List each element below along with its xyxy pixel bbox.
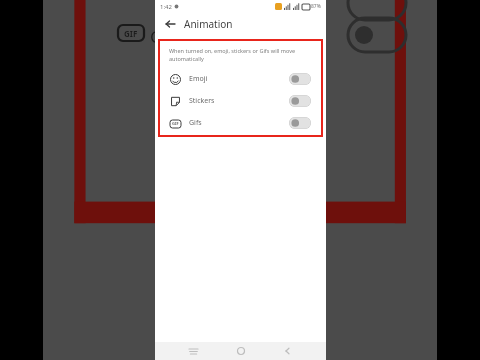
staticText: GIF <box>124 28 138 39</box>
button[interactable]: Emoji <box>160 68 321 90</box>
staticText: 87% <box>311 3 321 10</box>
staticText: Animation <box>184 17 233 31</box>
staticText: Gif <box>150 25 173 48</box>
staticText: When turned on, emoji, stickers or Gifs … <box>169 47 312 63</box>
button[interactable]: Toggle <box>289 73 311 85</box>
staticText: Gifs <box>189 118 202 128</box>
button[interactable]: Home <box>232 342 250 360</box>
button[interactable]: Toggle <box>289 117 311 129</box>
button[interactable]: Back <box>162 16 178 32</box>
button[interactable]: Toggle <box>289 95 311 107</box>
button[interactable]: GIF <box>160 112 321 134</box>
staticText: Stickers <box>189 96 215 106</box>
button[interactable]: Back <box>279 342 297 360</box>
button[interactable]: Stickers <box>160 90 321 112</box>
staticText: Emoji <box>189 74 208 84</box>
button[interactable]: Recents <box>184 342 202 360</box>
staticText: GIF <box>172 121 179 126</box>
staticText: 1:42 <box>160 3 172 11</box>
